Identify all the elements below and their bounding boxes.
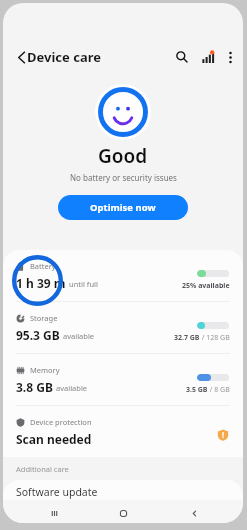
staticText: / 128 GB — [200, 333, 230, 343]
button[interactable]: Battery — [3, 250, 243, 301]
staticText: available — [56, 383, 88, 393]
staticText: No battery or security issues — [70, 172, 177, 183]
button[interactable]: Back — [182, 501, 206, 523]
staticText: until full — [69, 279, 98, 289]
staticText: Battery — [30, 261, 56, 271]
staticText: Additional care — [16, 464, 69, 474]
staticText: Storage — [30, 313, 58, 323]
staticText: Scan needed — [16, 431, 92, 447]
staticText: Memory — [30, 365, 60, 375]
staticText: 95.3 GB — [16, 327, 60, 343]
staticText: Device care — [27, 48, 101, 66]
button[interactable]: More options — [217, 44, 243, 70]
button[interactable]: Search — [169, 44, 195, 70]
button[interactable]: Storage — [3, 302, 243, 353]
staticText: / 8 GB — [208, 385, 230, 395]
button[interactable]: Recents — [42, 501, 66, 523]
staticText: available — [63, 331, 95, 341]
button[interactable]: Home — [111, 501, 135, 523]
staticText: 3.8 GB — [16, 379, 53, 395]
staticText: 3.5 GB — [186, 385, 208, 395]
staticText: 25% available — [182, 281, 230, 291]
button[interactable]: Memory — [3, 354, 243, 405]
staticText: Device protection — [30, 417, 92, 427]
button[interactable]: Usage statistics — [195, 44, 221, 70]
staticText: Optimise now — [90, 201, 156, 214]
staticText: Software update — [16, 485, 98, 499]
button[interactable]: Back — [9, 45, 33, 69]
button[interactable]: Optimise now — [58, 195, 188, 220]
staticText: 1 h 39 m — [16, 275, 66, 291]
staticText: 32.7 GB — [174, 333, 200, 343]
button[interactable]: Device protection — [3, 406, 243, 457]
button[interactable]: Software update — [3, 480, 243, 503]
staticText: Good — [98, 143, 148, 169]
